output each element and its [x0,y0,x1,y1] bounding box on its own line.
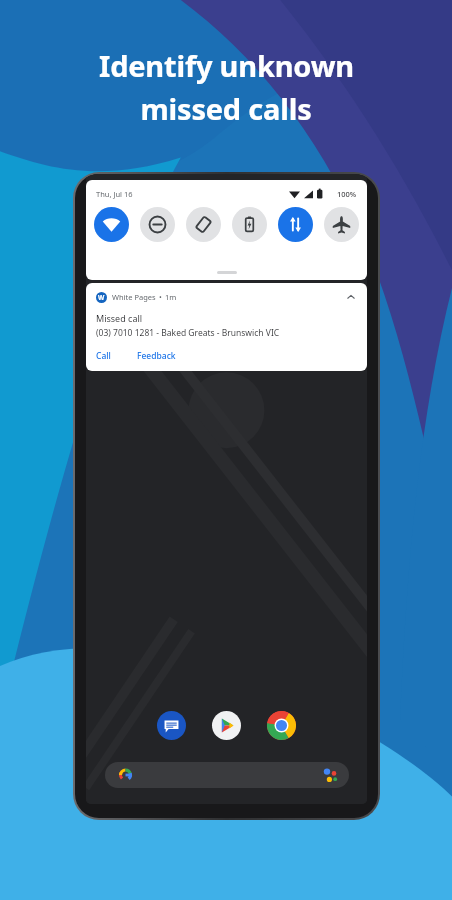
button[interactable]: Auto rotate [186,207,221,242]
staticText: Call [96,350,111,362]
button[interactable]: Call [96,350,115,362]
staticText: (03) 7010 1281 - Baked Greats - Brunswic… [96,327,280,339]
button[interactable]: Airplane mode [324,207,359,242]
staticText: Identify unknown [99,46,354,85]
staticText: • [159,292,162,302]
staticText: White Pages [112,292,156,302]
button[interactable]: Search [105,762,349,788]
button[interactable]: Play Store [212,711,241,740]
button[interactable]: Collapse [345,291,357,303]
staticText: Feedback [137,350,176,362]
button[interactable]: Mobile data [278,207,313,242]
button[interactable]: Do not disturb [140,207,175,242]
button[interactable]: Battery saver [232,207,267,242]
button[interactable]: Feedback [137,350,180,362]
button[interactable]: Wi-Fi [94,207,129,242]
button[interactable]: Messages [157,711,186,740]
staticText: Thu, Jul 16 [96,189,133,199]
staticText: 100% [337,189,357,199]
staticText: 1m [165,292,177,302]
button[interactable]: Chrome [267,711,296,740]
staticText: W [98,293,105,302]
button[interactable]: W [86,283,367,371]
staticText: missed calls [140,89,312,128]
staticText: Missed call [96,312,143,324]
